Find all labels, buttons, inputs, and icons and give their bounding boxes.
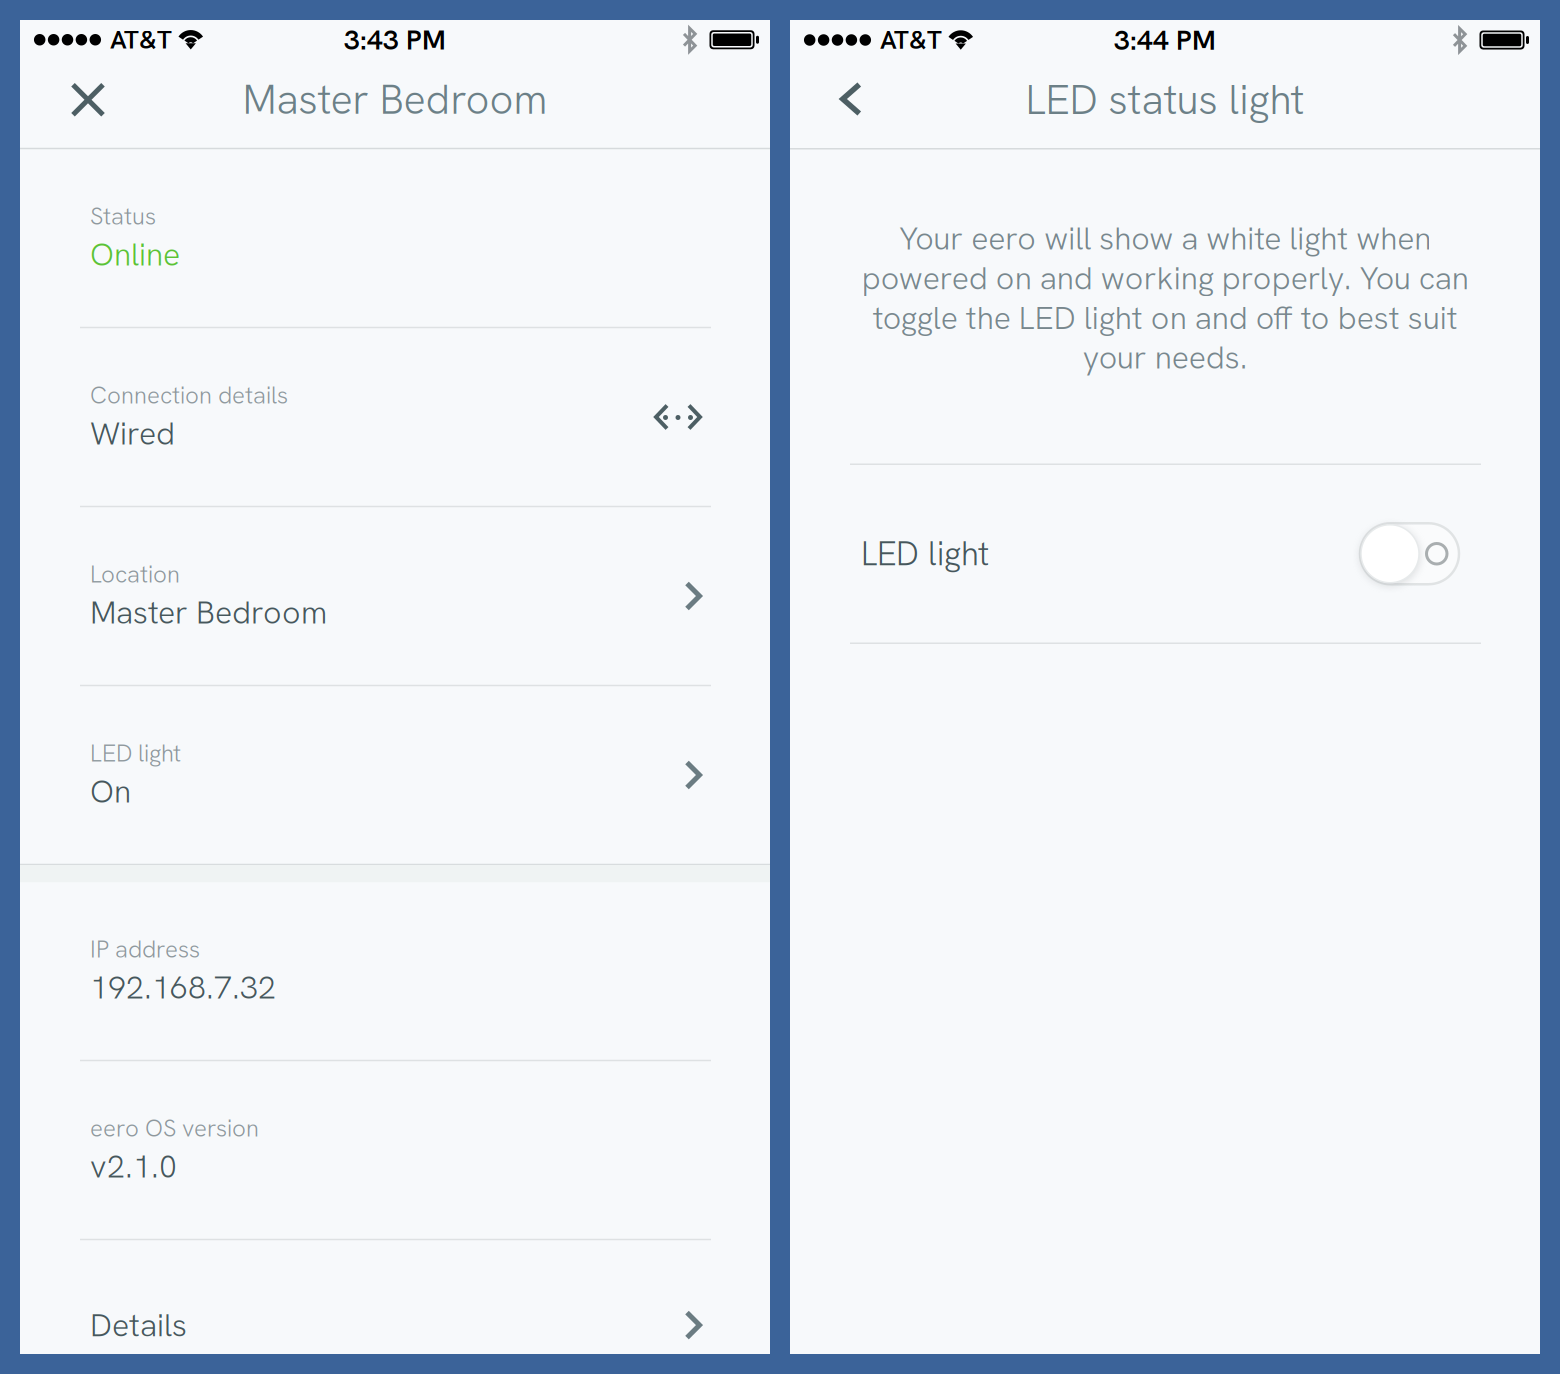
button[interactable]: Location — [20, 507, 770, 685]
staticText: Master Bedroom — [90, 591, 327, 633]
staticText: On — [90, 770, 131, 812]
staticText: 3:43 PM — [344, 21, 446, 58]
button[interactable]: IP address — [20, 882, 770, 1060]
staticText: AT&T — [880, 23, 942, 56]
staticText: LED light — [90, 738, 181, 769]
staticText: Your eero will show a white light when p… — [861, 217, 1468, 378]
staticText: LED status light — [1025, 73, 1304, 126]
staticText: Master Bedroom — [242, 72, 547, 126]
staticText: v2.1.0 — [90, 1145, 177, 1187]
staticText: AT&T — [110, 23, 172, 56]
staticText: Connection details — [90, 380, 288, 411]
staticText: LED light — [861, 532, 989, 575]
button[interactable]: Status — [20, 149, 770, 327]
button[interactable]: Close — [42, 60, 134, 148]
staticText: 3:44 PM — [1114, 22, 1216, 58]
staticText: Details — [90, 1304, 187, 1346]
button[interactable]: Details — [20, 1240, 770, 1354]
staticText: 192.168.7.32 — [90, 966, 276, 1008]
staticText: eero OS version — [90, 1113, 259, 1144]
button[interactable]: LED light — [790, 465, 1540, 642]
staticText: Status — [90, 201, 156, 232]
staticText: IP address — [90, 934, 200, 965]
button[interactable]: Connection details — [20, 328, 770, 506]
button[interactable]: Back — [805, 60, 897, 148]
staticText: Location — [90, 559, 180, 590]
button[interactable]: LED light — [20, 686, 770, 864]
staticText: Wired — [90, 412, 175, 454]
staticText: Online — [90, 233, 180, 275]
button[interactable]: eero OS version — [20, 1061, 770, 1239]
